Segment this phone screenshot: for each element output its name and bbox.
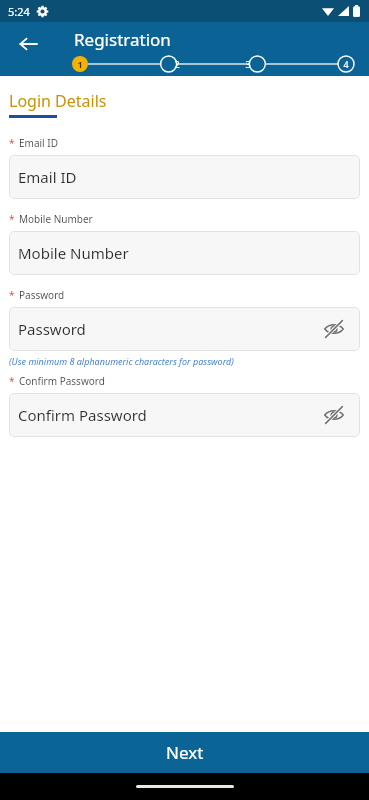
staticText: Next [166,741,204,764]
button[interactable]: 3 [240,58,256,70]
staticText: * [9,136,15,150]
button[interactable]: Toggle password visibility [320,315,348,343]
staticText: 3 [245,58,251,70]
button[interactable]: Email ID [9,155,360,199]
button[interactable]: 1 [72,58,88,70]
staticText: Password [19,288,65,302]
staticText: Confirm Password [18,405,147,425]
button[interactable]: Back [12,28,44,60]
staticText: Login Details [9,90,107,112]
staticText: 2 [174,58,180,70]
button[interactable]: Confirm Password [9,393,360,437]
button[interactable]: Next [0,732,369,773]
staticText: * [9,212,15,226]
staticText: * [9,288,15,302]
staticText: Email ID [19,136,58,150]
staticText: Password [18,319,86,339]
staticText: (Use minimum 8 alphanumeric characters f… [9,355,234,367]
button[interactable]: Mobile Number [9,231,360,275]
staticText: Mobile Number [19,212,93,226]
staticText: Confirm Password [19,374,105,388]
staticText: Email ID [18,167,77,187]
button[interactable]: Toggle password visibility [320,401,348,429]
staticText: Mobile Number [18,243,129,263]
button[interactable]: Password [9,307,360,351]
staticText: Registration [74,28,171,51]
button[interactable]: 4 [338,58,354,70]
button[interactable]: 2 [169,58,185,70]
staticText: 5:24 [8,4,30,19]
staticText: 4 [343,58,349,70]
staticText: * [9,374,15,388]
staticText: 1 [77,58,83,70]
